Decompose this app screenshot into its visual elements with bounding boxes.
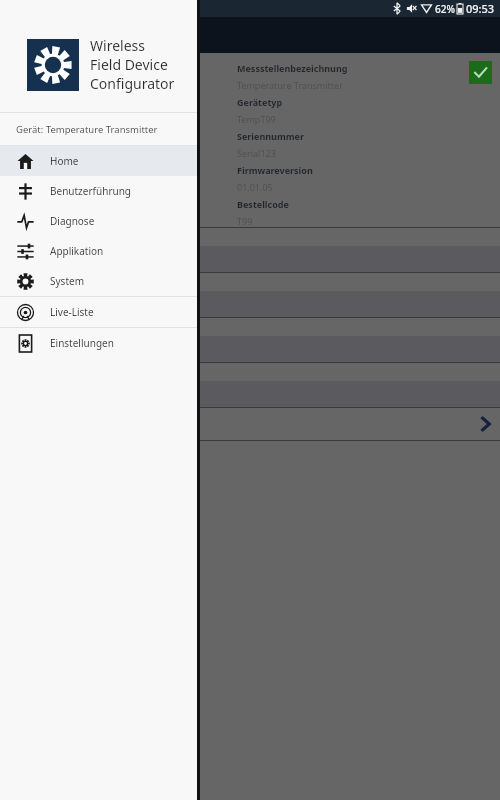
staticText: Field Device: [90, 55, 168, 74]
staticText: Gerätetyp: [237, 96, 283, 108]
button[interactable]: Home: [0, 146, 197, 176]
staticText: Live-Liste: [50, 305, 94, 319]
staticText: T99: [237, 215, 253, 227]
button[interactable]: Applikation: [0, 236, 197, 266]
button[interactable]: [0, 246, 500, 272]
staticText: 01.01.05: [237, 181, 273, 193]
staticText: Home: [50, 154, 79, 168]
button[interactable]: [0, 336, 500, 362]
staticText: Configurator: [90, 74, 175, 93]
button[interactable]: [0, 228, 500, 246]
staticText: Diagnose: [50, 214, 95, 228]
button[interactable]: Weiter: [0, 408, 500, 440]
button[interactable]: Benutzerführung: [0, 176, 197, 206]
staticText: Bestellcode: [237, 198, 289, 210]
staticText: 62%: [435, 2, 455, 16]
staticText: Einstellungen: [50, 336, 114, 350]
staticText: Benutzerführung: [50, 184, 132, 198]
button[interactable]: Bestätigen: [469, 61, 492, 84]
button[interactable]: System: [0, 266, 197, 296]
staticText: Seriennummer: [237, 130, 304, 142]
button[interactable]: [0, 291, 500, 317]
staticText: TempT99: [237, 113, 276, 125]
staticText: Messstellenbezeichnung: [237, 62, 348, 74]
staticText: System: [50, 274, 84, 288]
button[interactable]: Einstellungen: [0, 328, 197, 358]
staticText: Wireless: [90, 36, 145, 55]
staticText: Gerät: Temperature Transmitter: [16, 123, 158, 136]
button[interactable]: [0, 318, 500, 336]
button[interactable]: Diagnose: [0, 206, 197, 236]
button[interactable]: [0, 363, 500, 381]
button[interactable]: [0, 273, 500, 291]
staticText: Applikation: [50, 244, 104, 258]
button[interactable]: Live-Liste: [0, 297, 197, 327]
button[interactable]: [0, 381, 500, 407]
staticText: Firmwareversion: [237, 164, 313, 176]
staticText: Serial123: [237, 147, 276, 159]
staticText: Temperature Transmitter: [237, 79, 343, 91]
staticText: 09:53: [466, 1, 495, 16]
